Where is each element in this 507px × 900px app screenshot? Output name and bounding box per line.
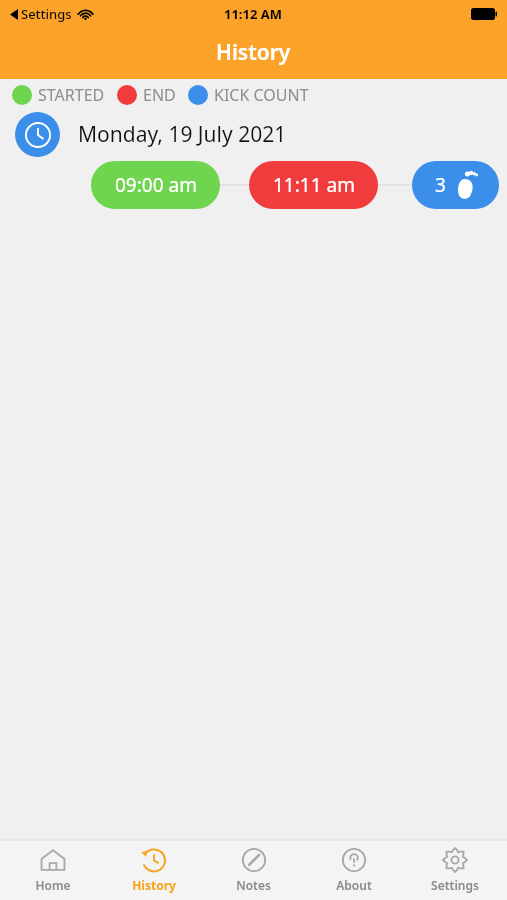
staticText: History (132, 877, 176, 893)
staticText: Notes (236, 877, 271, 893)
button[interactable]: Session time (15, 112, 60, 157)
staticText: 3 (435, 172, 446, 198)
button[interactable]: Notes (206, 840, 301, 900)
staticText: Home (35, 877, 71, 893)
button[interactable]: Home (5, 840, 100, 900)
staticText: KICK COUNT (214, 84, 309, 106)
staticText: Settings (21, 5, 72, 23)
button[interactable]: About (306, 840, 401, 900)
staticText: END (143, 84, 176, 106)
staticText: Monday, 19 July 2021 (78, 120, 287, 149)
staticText: 11:11 am (273, 172, 355, 198)
staticText: Settings (431, 877, 479, 893)
staticText: 11:12 AM (224, 5, 283, 23)
staticText: About (336, 877, 372, 893)
staticText: STARTED (38, 84, 105, 106)
button[interactable]: Settings (407, 840, 502, 900)
button[interactable]: 3 (412, 161, 499, 209)
button[interactable]: 09:00 am (91, 161, 220, 209)
staticText: History (216, 38, 291, 67)
staticText: 09:00 am (115, 172, 197, 198)
button[interactable]: 11:11 am (249, 161, 378, 209)
button[interactable]: History (106, 840, 201, 900)
